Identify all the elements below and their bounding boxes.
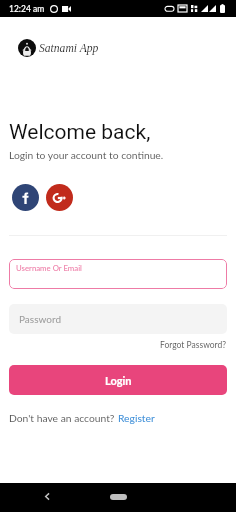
staticText: 12:24 am [9, 4, 45, 14]
button[interactable]: Password [9, 304, 227, 334]
button[interactable]: Login [9, 365, 227, 395]
button[interactable]: Satnami App [18, 39, 99, 57]
button[interactable]: Home [110, 494, 127, 500]
button[interactable]: Username Or Email [9, 259, 227, 289]
staticText: Forgot Password? [160, 340, 227, 350]
button[interactable]: Register [118, 412, 155, 424]
staticText: Username Or Email [16, 263, 82, 272]
staticText: Login to your account to continue. [9, 149, 164, 161]
button[interactable]: Login with Facebook [12, 184, 39, 211]
staticText: Password [19, 313, 61, 325]
staticText: Satnami App [39, 42, 99, 55]
button[interactable]: Back [41, 490, 54, 503]
button[interactable]: Forgot Password? [160, 338, 227, 352]
staticText: Welcome back, [9, 120, 151, 145]
staticText: Register [118, 412, 155, 424]
staticText: Don't have an account? [9, 412, 118, 424]
button[interactable]: Login with Google [46, 184, 73, 211]
staticText: Login [105, 374, 132, 387]
